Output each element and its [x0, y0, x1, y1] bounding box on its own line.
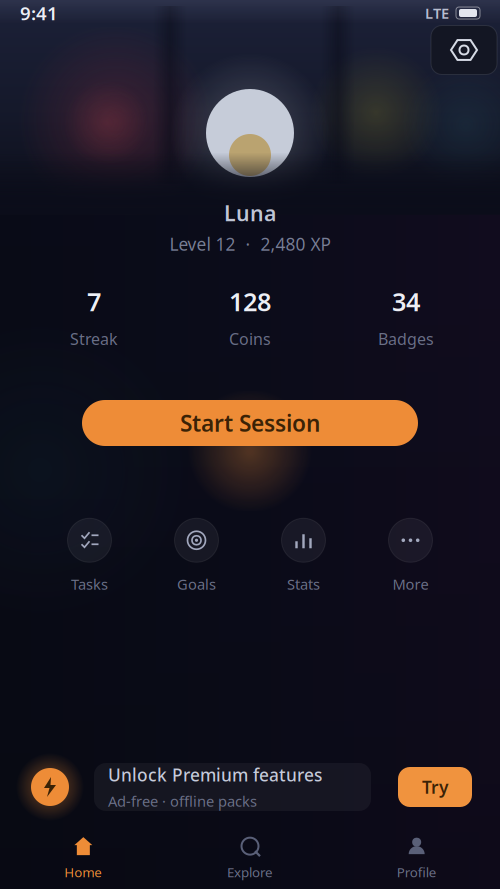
staticText: Level 12 · 2,480 XP — [169, 232, 330, 255]
button[interactable]: Goals — [143, 518, 250, 594]
staticText: Home — [64, 863, 102, 881]
staticText: Unlock Premium features — [108, 763, 322, 786]
button[interactable]: Profile — [333, 835, 500, 881]
staticText: Start Session — [180, 408, 320, 438]
button[interactable]: Stats — [250, 518, 357, 594]
staticText: Explore — [227, 863, 273, 881]
staticText: 128 — [229, 285, 271, 318]
staticText: 7 — [87, 285, 101, 318]
staticText: More — [392, 574, 428, 594]
staticText: Coins — [229, 328, 271, 349]
staticText: Goals — [177, 574, 216, 594]
staticText: Ad-free · offline packs — [108, 791, 257, 811]
staticText: Try — [422, 775, 448, 798]
staticText: Badges — [378, 328, 434, 349]
staticText: 34 — [392, 285, 420, 318]
staticText: Luna — [224, 199, 276, 227]
staticText: Streak — [70, 328, 118, 349]
button[interactable]: Unlock Premium features — [0, 760, 500, 814]
button[interactable]: Start Session — [82, 400, 418, 446]
button[interactable]: Tasks — [36, 518, 143, 594]
button[interactable]: More — [357, 518, 464, 594]
staticText: LTE — [425, 3, 449, 23]
button[interactable]: Explore — [167, 835, 333, 881]
button[interactable]: Home — [0, 835, 167, 881]
staticText: Stats — [287, 574, 320, 594]
staticText: Profile — [397, 863, 437, 881]
button[interactable]: Settings — [431, 25, 497, 74]
staticText: 9:41 — [20, 1, 58, 25]
staticText: Tasks — [71, 574, 108, 594]
